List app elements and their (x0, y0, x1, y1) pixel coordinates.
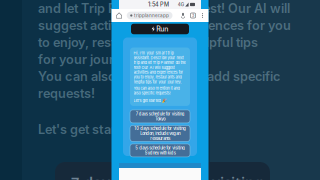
button[interactable]: Tabs (190, 13, 195, 18)
staticText: You can also mention it and add specific (38, 69, 280, 84)
staticText: Hi, I'm your smart trip assistant. Descr… (133, 50, 185, 84)
button[interactable]: 5 days schedule for visiting Sydney with… (130, 144, 190, 157)
staticText: Run (156, 25, 168, 33)
staticText: Let's get started (38, 122, 135, 137)
staticText: 4G (178, 2, 184, 7)
button[interactable]: Voice search (180, 12, 185, 18)
staticText: suggest activities and experiences for y… (38, 18, 291, 33)
staticText: Let's get started 🎉 (133, 98, 166, 103)
staticText: tripplanner.app (134, 13, 169, 18)
staticText: 7 days schedule for visiting Tokyo (135, 111, 184, 121)
staticText: 10 days schedule for visiting London, in… (134, 126, 186, 141)
staticText: to enjoy, restaurants and helpful tips (38, 35, 258, 50)
button[interactable]: 10 days schedule for visiting London, in… (130, 125, 190, 141)
staticText: and let Trip Planner do the rest! Our AI… (38, 1, 290, 16)
staticText: 7-days schedule for visiting (71, 172, 263, 180)
staticText: 5 days schedule for visiting Sydney with… (135, 145, 185, 155)
button[interactable]: tripplanner.app (127, 12, 172, 19)
button[interactable]: More options (200, 12, 204, 18)
staticText: You can also mention it and also specifi… (133, 86, 179, 96)
button[interactable]: Run (131, 24, 189, 34)
button[interactable]: 7 days schedule for visiting Tokyo (130, 110, 190, 123)
button[interactable]: Home (116, 13, 122, 18)
staticText: for your journey. (38, 52, 140, 67)
staticText: 3 (192, 13, 194, 18)
staticText: 1:54 PM (148, 1, 169, 8)
staticText: requests! (38, 86, 95, 101)
